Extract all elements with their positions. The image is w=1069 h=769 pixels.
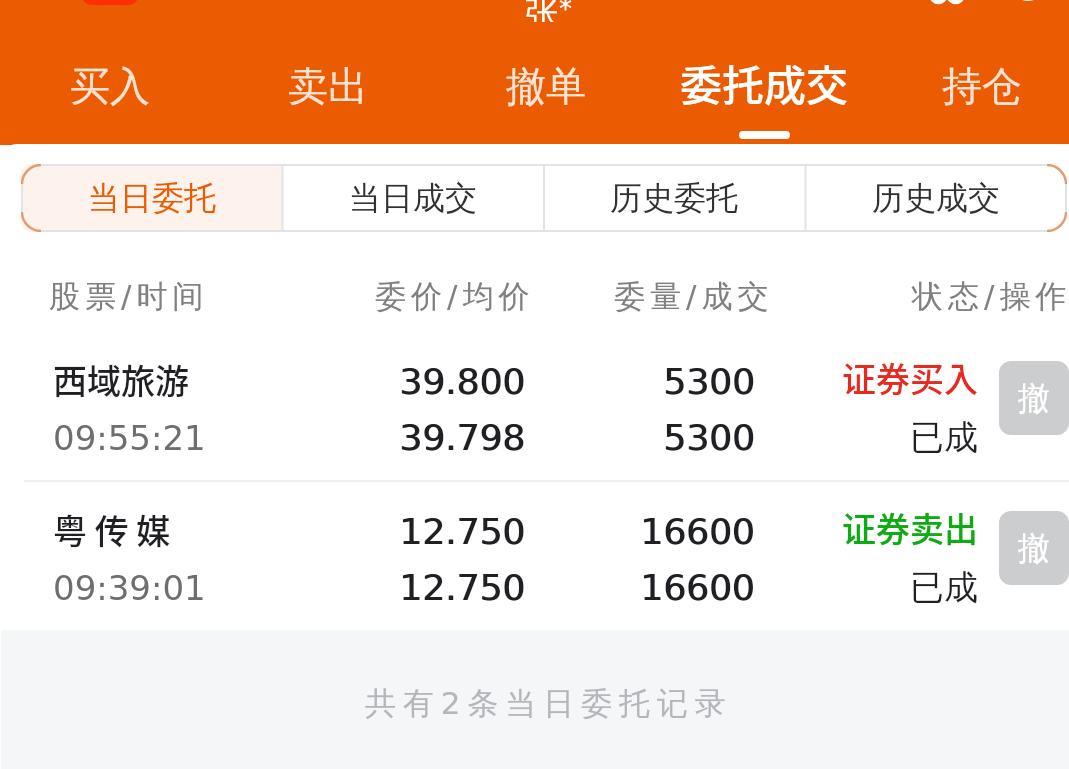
button[interactable]: 撤单 [999, 361, 1069, 435]
staticText: 撤 [1018, 528, 1050, 568]
staticText: 张 [525, 0, 559, 22]
button[interactable]: 历史委托 [543, 164, 805, 232]
staticText: 12.750 [400, 511, 526, 553]
staticText: 已成 [910, 416, 978, 459]
staticText: 撤 [1018, 378, 1050, 418]
button[interactable]: 撤单 [437, 30, 655, 144]
staticText: 5300 [664, 417, 756, 459]
staticText: 当日委托 [88, 178, 216, 218]
staticText: 已成 [910, 566, 978, 609]
staticText: 撤单 [506, 61, 586, 111]
button[interactable]: 西域旅游 [1, 332, 1069, 480]
staticText: 持仓 [942, 61, 1022, 111]
staticText: 16600 [641, 511, 756, 553]
staticText: 39.798 [399, 417, 525, 459]
staticText: 西域旅游 [53, 355, 189, 404]
staticText: 历史成交 [872, 178, 1000, 218]
staticText: 5300 [663, 361, 755, 403]
button[interactable]: 撤单 [999, 511, 1069, 585]
staticText: 5300 [663, 417, 755, 459]
staticText: 39.800 [400, 361, 526, 403]
staticText: 历史委托 [610, 178, 738, 218]
staticText: 12.750 [399, 511, 525, 553]
staticText: 16600 [640, 567, 755, 609]
staticText: 买入 [70, 61, 150, 111]
button[interactable]: 历史成交 [805, 164, 1067, 232]
button[interactable]: 持仓 [873, 30, 1069, 144]
button[interactable]: Notice [82, 0, 138, 5]
button[interactable]: 卖出 [219, 30, 437, 144]
staticText: 当日成交 [349, 178, 477, 218]
staticText: 粤 传 媒 [53, 505, 171, 554]
button[interactable]: 当日委托 [21, 164, 282, 232]
staticText: 12.750 [399, 567, 525, 609]
staticText: 39.800 [399, 361, 525, 403]
staticText: 证券买入 [842, 353, 978, 402]
staticText: 09:55:21 [53, 418, 206, 458]
button[interactable]: 粤 传 媒 [1, 482, 1069, 630]
staticText: 委量/成交 [614, 277, 774, 316]
staticText: 39.798 [400, 417, 526, 459]
staticText: * [559, 0, 572, 24]
staticText: 12.750 [400, 567, 526, 609]
staticText: 16600 [640, 511, 755, 553]
staticText: 股票/时间 [49, 277, 209, 316]
staticText: 卖出 [288, 61, 368, 111]
staticText: 09:39:01 [53, 568, 206, 608]
button[interactable]: 当日成交 [282, 164, 543, 232]
staticText: 证券卖出 [842, 503, 978, 552]
staticText: 委托成交 [680, 52, 849, 113]
staticText: 16600 [641, 567, 756, 609]
staticText: 共有2条当日委托记录 [365, 684, 733, 723]
button[interactable]: 委托成交 [655, 30, 873, 144]
staticText: 委价/均价 [375, 277, 535, 316]
staticText: 状态/操作 [912, 277, 1069, 316]
staticText: 5300 [664, 361, 756, 403]
button[interactable]: 买入 [1, 30, 219, 144]
